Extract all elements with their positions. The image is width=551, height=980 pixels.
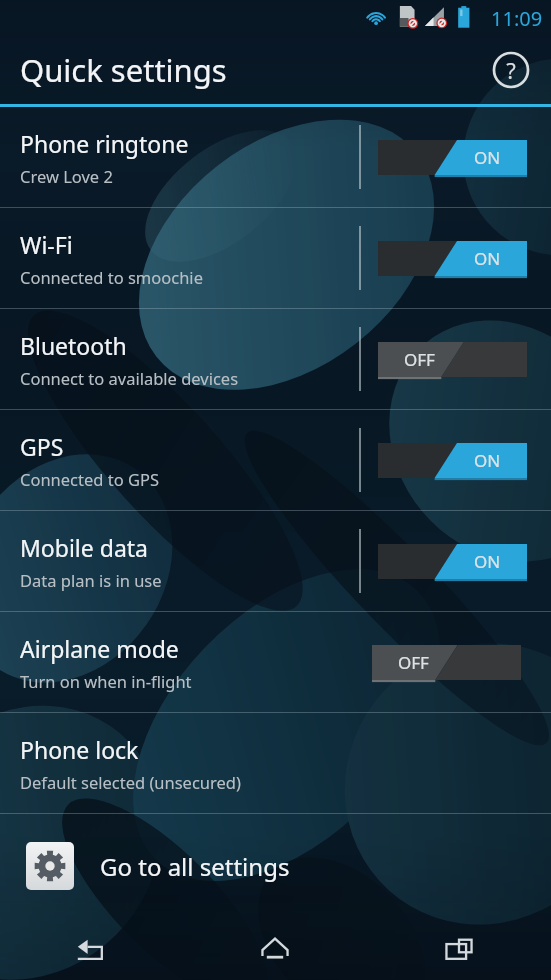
- staticText: Quick settings: [20, 49, 227, 91]
- staticText: Turn on when in-flight: [20, 670, 192, 692]
- staticText: Go to all settings: [100, 850, 290, 883]
- staticText: ON: [474, 247, 501, 270]
- button[interactable]: Phone lock: [0, 713, 551, 813]
- button[interactable]: Airplane mode: [0, 612, 551, 712]
- button[interactable]: GPS toggle: [378, 443, 527, 478]
- staticText: Airplane mode: [20, 633, 179, 664]
- button[interactable]: Mobile data toggle: [378, 544, 527, 579]
- staticText: Bluetooth: [20, 330, 127, 361]
- staticText: ON: [474, 550, 501, 573]
- staticText: 11:09: [491, 5, 543, 32]
- button[interactable]: Bluetooth: [0, 309, 551, 409]
- button[interactable]: Airplane mode toggle: [372, 645, 521, 680]
- button[interactable]: Back: [0, 918, 183, 980]
- staticText: Mobile data: [20, 532, 148, 563]
- button[interactable]: Home: [183, 918, 367, 980]
- button[interactable]: Help: [489, 48, 533, 92]
- staticText: ON: [474, 146, 501, 169]
- button[interactable]: Go to all settings: [0, 814, 551, 918]
- staticText: Phone lock: [20, 734, 139, 765]
- button[interactable]: Wi-Fi: [0, 208, 551, 308]
- staticText: GPS: [20, 431, 64, 462]
- button[interactable]: Wi-Fi toggle: [378, 241, 527, 276]
- button[interactable]: GPS: [0, 410, 551, 510]
- staticText: Phone ringtone: [20, 128, 189, 159]
- button[interactable]: Bluetooth toggle: [378, 342, 527, 377]
- staticText: Wi-Fi: [20, 229, 73, 260]
- staticText: ON: [474, 449, 501, 472]
- staticText: Connected to smoochie: [20, 266, 203, 288]
- staticText: OFF: [404, 348, 435, 371]
- staticText: Connect to available devices: [20, 367, 239, 389]
- staticText: ?: [506, 55, 516, 85]
- staticText: OFF: [398, 651, 429, 674]
- staticText: Default selected (unsecured): [20, 771, 241, 793]
- staticText: Connected to GPS: [20, 468, 160, 490]
- button[interactable]: Recents: [367, 918, 551, 980]
- staticText: Data plan is in use: [20, 569, 162, 591]
- button[interactable]: Mobile data: [0, 511, 551, 611]
- staticText: Crew Love 2: [20, 165, 113, 187]
- button[interactable]: Phone ringtone toggle: [378, 140, 527, 175]
- button[interactable]: Phone ringtone: [0, 107, 551, 207]
